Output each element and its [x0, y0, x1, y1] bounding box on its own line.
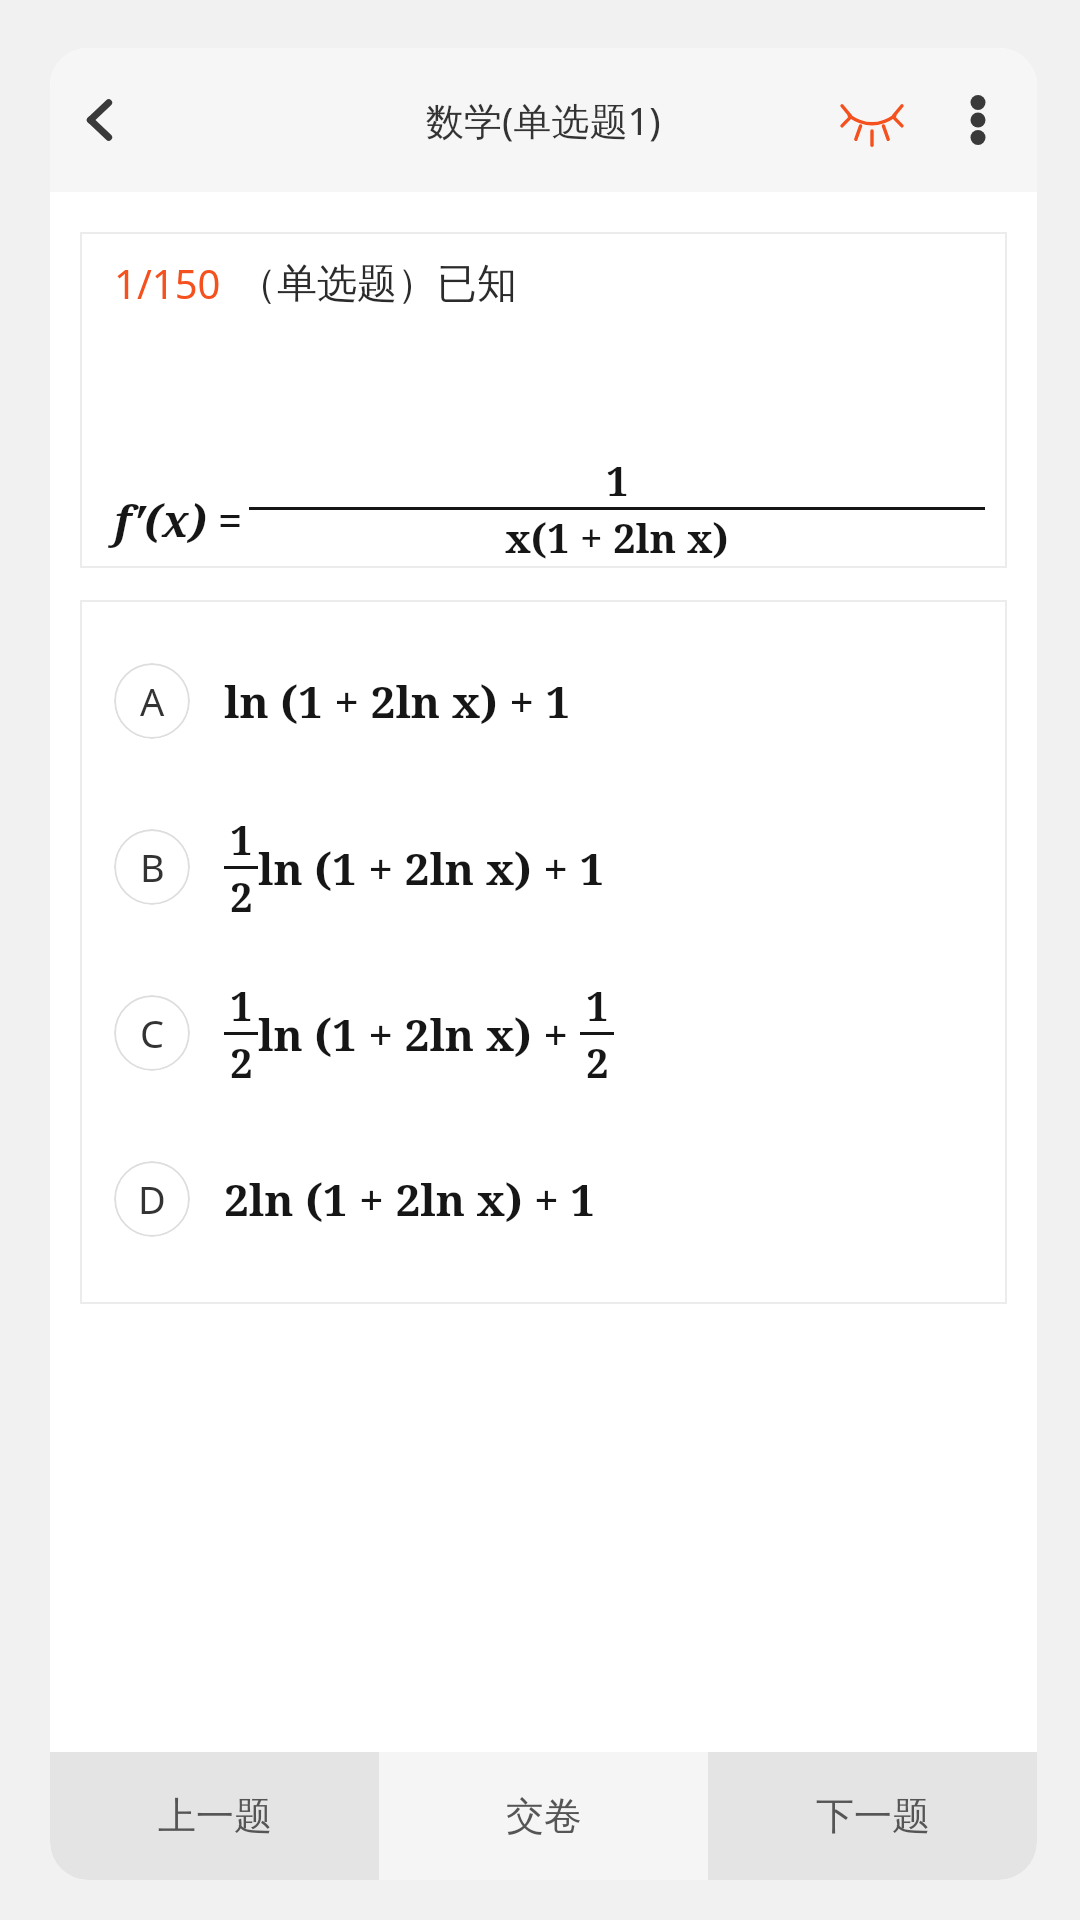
staticText: A [140, 675, 165, 727]
button[interactable]: Hide answer [827, 75, 917, 165]
button[interactable]: Back [52, 72, 148, 168]
staticText: 2ln (1 + 2ln x) + 1 [224, 1169, 596, 1229]
staticText: D [138, 1173, 166, 1225]
staticText: 交卷 [506, 1792, 582, 1840]
staticText: f′(x) = [114, 490, 243, 550]
staticText: 1 [230, 812, 253, 866]
staticText: 2 [230, 1035, 253, 1089]
button[interactable]: C [80, 950, 1007, 1116]
staticText: 下一题 [816, 1792, 930, 1840]
staticText: ln (1 + 2ln x) + 1 [224, 671, 571, 731]
button[interactable]: More options [939, 81, 1017, 159]
button[interactable]: A [80, 618, 1007, 784]
staticText: 数学(单选题1) [426, 94, 661, 146]
button[interactable]: 下一题 [708, 1752, 1037, 1880]
staticText: x(1 + 2ln x) [505, 510, 729, 564]
staticText: 2 [230, 869, 253, 923]
staticText: （单选题）已知 [237, 258, 517, 308]
staticText: 1 [230, 978, 253, 1032]
staticText: 2 [586, 1035, 609, 1089]
staticText: 1 [586, 978, 609, 1032]
staticText: 1/150 [114, 256, 221, 310]
staticText: ln (1 + 2ln x) + 1 [258, 838, 605, 898]
staticText: 上一题 [158, 1792, 272, 1840]
staticText: C [140, 1007, 165, 1059]
button[interactable]: 上一题 [50, 1752, 379, 1880]
button[interactable]: B [80, 784, 1007, 950]
staticText: B [140, 841, 165, 893]
staticText: 1 [606, 453, 629, 507]
button[interactable]: D [80, 1116, 1007, 1282]
staticText: ln (1 + 2ln x) + [258, 1004, 580, 1064]
button[interactable]: 交卷 [379, 1752, 708, 1880]
